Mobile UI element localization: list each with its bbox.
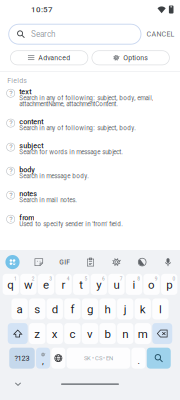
button[interactable]: k <box>135 298 151 319</box>
button[interactable]: q <box>3 274 19 295</box>
button[interactable]: Period <box>131 348 145 369</box>
staticText: Advanced <box>38 54 70 61</box>
staticText: ?123 <box>14 355 29 362</box>
button[interactable]: ? <box>0 118 180 142</box>
button[interactable]: b <box>99 323 116 344</box>
staticText: d <box>52 304 58 315</box>
staticText: Search <box>31 30 55 38</box>
staticText: m <box>138 329 148 339</box>
staticText: r <box>62 279 66 290</box>
button[interactable]: Hide keyboard <box>11 377 25 391</box>
staticText: z <box>34 329 40 339</box>
staticText: ? <box>9 192 12 199</box>
staticText: Search in any of following: subject, bod… <box>19 95 153 101</box>
button[interactable]: Search <box>9 24 141 44</box>
button[interactable]: g <box>82 298 98 319</box>
button[interactable]: y <box>91 274 107 295</box>
staticText: 8 <box>137 276 140 281</box>
staticText: body <box>19 166 35 173</box>
staticText: ? <box>9 120 12 126</box>
staticText: content <box>19 118 43 125</box>
button[interactable]: t <box>73 274 89 295</box>
staticText: b <box>105 329 111 339</box>
staticText: 2 <box>32 276 35 281</box>
button[interactable]: x <box>47 323 63 344</box>
button[interactable]: p <box>161 274 177 295</box>
staticText: 7 <box>120 276 123 281</box>
staticText: a <box>17 304 23 315</box>
staticText: Fields <box>7 77 27 84</box>
button[interactable]: Comma <box>36 348 50 369</box>
button[interactable]: m <box>135 323 151 344</box>
staticText: 1 <box>14 276 17 281</box>
staticText: h <box>105 304 111 315</box>
button[interactable]: Search <box>147 348 171 369</box>
staticText: t <box>79 279 83 290</box>
button[interactable]: j <box>117 298 133 319</box>
staticText: w <box>24 279 33 290</box>
staticText: g <box>87 304 93 315</box>
button[interactable]: i <box>126 274 142 295</box>
staticText: notes <box>19 190 37 197</box>
button[interactable]: o <box>143 274 160 295</box>
staticText: q <box>7 279 14 290</box>
button[interactable]: h <box>99 298 116 319</box>
button[interactable]: Advanced <box>10 51 88 65</box>
button[interactable]: CANCEL <box>143 27 177 41</box>
staticText: 3 <box>49 276 52 281</box>
staticText: e <box>43 279 49 290</box>
staticText: n <box>122 329 128 339</box>
button[interactable]: GIF <box>57 254 73 270</box>
button[interactable]: ? <box>0 214 180 238</box>
button[interactable]: Voice input <box>160 254 176 270</box>
staticText: 4 <box>67 276 70 281</box>
staticText: l <box>159 304 162 315</box>
staticText: Options <box>123 54 148 61</box>
button[interactable]: ? <box>0 190 180 214</box>
button[interactable]: ? <box>0 142 180 166</box>
button[interactable]: v <box>82 323 98 344</box>
button[interactable]: Clipboard <box>82 254 98 270</box>
button[interactable]: Backspace <box>152 323 172 344</box>
button[interactable]: f <box>64 298 80 319</box>
button[interactable]: d <box>47 298 63 319</box>
button[interactable]: Stickers <box>31 254 47 270</box>
staticText: p <box>166 279 172 290</box>
button[interactable]: r <box>55 274 72 295</box>
button[interactable]: u <box>108 274 124 295</box>
staticText: u <box>113 279 119 290</box>
button[interactable]: Space <box>67 348 130 369</box>
button[interactable]: Options <box>92 51 169 65</box>
staticText: x <box>52 329 58 339</box>
button[interactable]: c <box>64 323 80 344</box>
staticText: Used to specify sender in 'from' field. <box>19 221 123 227</box>
button[interactable]: z <box>29 323 45 344</box>
button[interactable]: Language <box>51 348 65 369</box>
button[interactable]: Themes <box>134 254 150 270</box>
button[interactable]: Symbols <box>9 348 35 369</box>
staticText: 5 <box>84 276 87 281</box>
button[interactable]: a <box>11 298 28 319</box>
button[interactable]: Shift <box>8 323 28 344</box>
staticText: ? <box>9 216 12 223</box>
staticText: CANCEL <box>146 31 174 37</box>
staticText: s <box>34 304 40 315</box>
staticText: y <box>96 279 101 290</box>
button[interactable]: Google Lens <box>4 254 21 271</box>
staticText: Search in message body. <box>19 173 89 179</box>
button[interactable]: Settings <box>108 254 124 270</box>
staticText: attachmentName, attachmentContent. <box>19 101 118 107</box>
staticText: j <box>124 304 127 315</box>
button[interactable]: ? <box>0 166 180 190</box>
button[interactable]: e <box>38 274 54 295</box>
button[interactable]: w <box>20 274 36 295</box>
staticText: o <box>148 279 155 290</box>
button[interactable]: s <box>29 298 45 319</box>
staticText: Search for words in message subject. <box>19 149 123 155</box>
staticText: Search in any of following: subject, bod… <box>19 125 136 131</box>
staticText: text <box>19 88 31 95</box>
button[interactable]: ? <box>0 88 180 118</box>
button[interactable]: l <box>152 298 168 319</box>
staticText: v <box>87 329 93 339</box>
button[interactable]: n <box>117 323 133 344</box>
